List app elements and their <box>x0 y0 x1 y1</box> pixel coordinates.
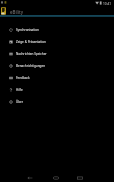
button[interactable]: Nachrichten Speicher <box>0 48 114 60</box>
button[interactable]: Synchronisation <box>0 24 114 36</box>
staticText: Hilfe <box>16 88 23 92</box>
button[interactable]: Über <box>0 96 114 108</box>
staticText: eBility <box>10 9 23 15</box>
staticText: Synchronisation <box>16 28 39 32</box>
staticText: 10:41 <box>103 2 112 6</box>
button[interactable]: Zeige & Präsentation <box>0 36 114 48</box>
button[interactable]: Feedback <box>0 72 114 84</box>
staticText: Benachrichtigungen <box>16 64 46 68</box>
button[interactable]: Benachrichtigungen <box>0 60 114 72</box>
button[interactable]: Recents <box>72 170 88 182</box>
button[interactable]: Hilfe <box>0 84 114 96</box>
button[interactable]: Home <box>48 170 64 182</box>
staticText: Über <box>16 100 24 104</box>
staticText: Feedback <box>16 76 30 80</box>
button[interactable]: Back <box>22 170 38 182</box>
staticText: Zeige & Präsentation <box>16 40 46 44</box>
staticText: Nachrichten Speicher <box>16 52 47 56</box>
